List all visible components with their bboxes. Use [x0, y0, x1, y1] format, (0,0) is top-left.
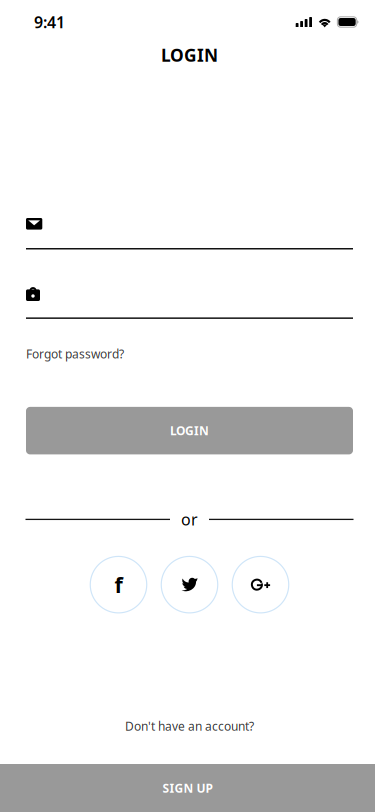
- button[interactable]: Sign in with Google Plus: [232, 556, 289, 613]
- button[interactable]: LOGIN: [26, 407, 353, 454]
- button[interactable]: Forgot password?: [26, 345, 124, 363]
- staticText: Forgot password?: [26, 346, 124, 362]
- button[interactable]: Sign in with Twitter: [161, 556, 218, 613]
- staticText: or: [181, 509, 198, 530]
- button[interactable]: SIGN UP: [0, 764, 375, 812]
- staticText: LOGIN: [161, 43, 218, 66]
- staticText: Don't have an account?: [125, 718, 254, 734]
- staticText: 9:41: [34, 11, 65, 33]
- button[interactable]: Sign in with Facebook: [90, 556, 147, 613]
- staticText: LOGIN: [170, 423, 209, 439]
- staticText: SIGN UP: [162, 780, 212, 796]
- staticText: f: [114, 570, 122, 599]
